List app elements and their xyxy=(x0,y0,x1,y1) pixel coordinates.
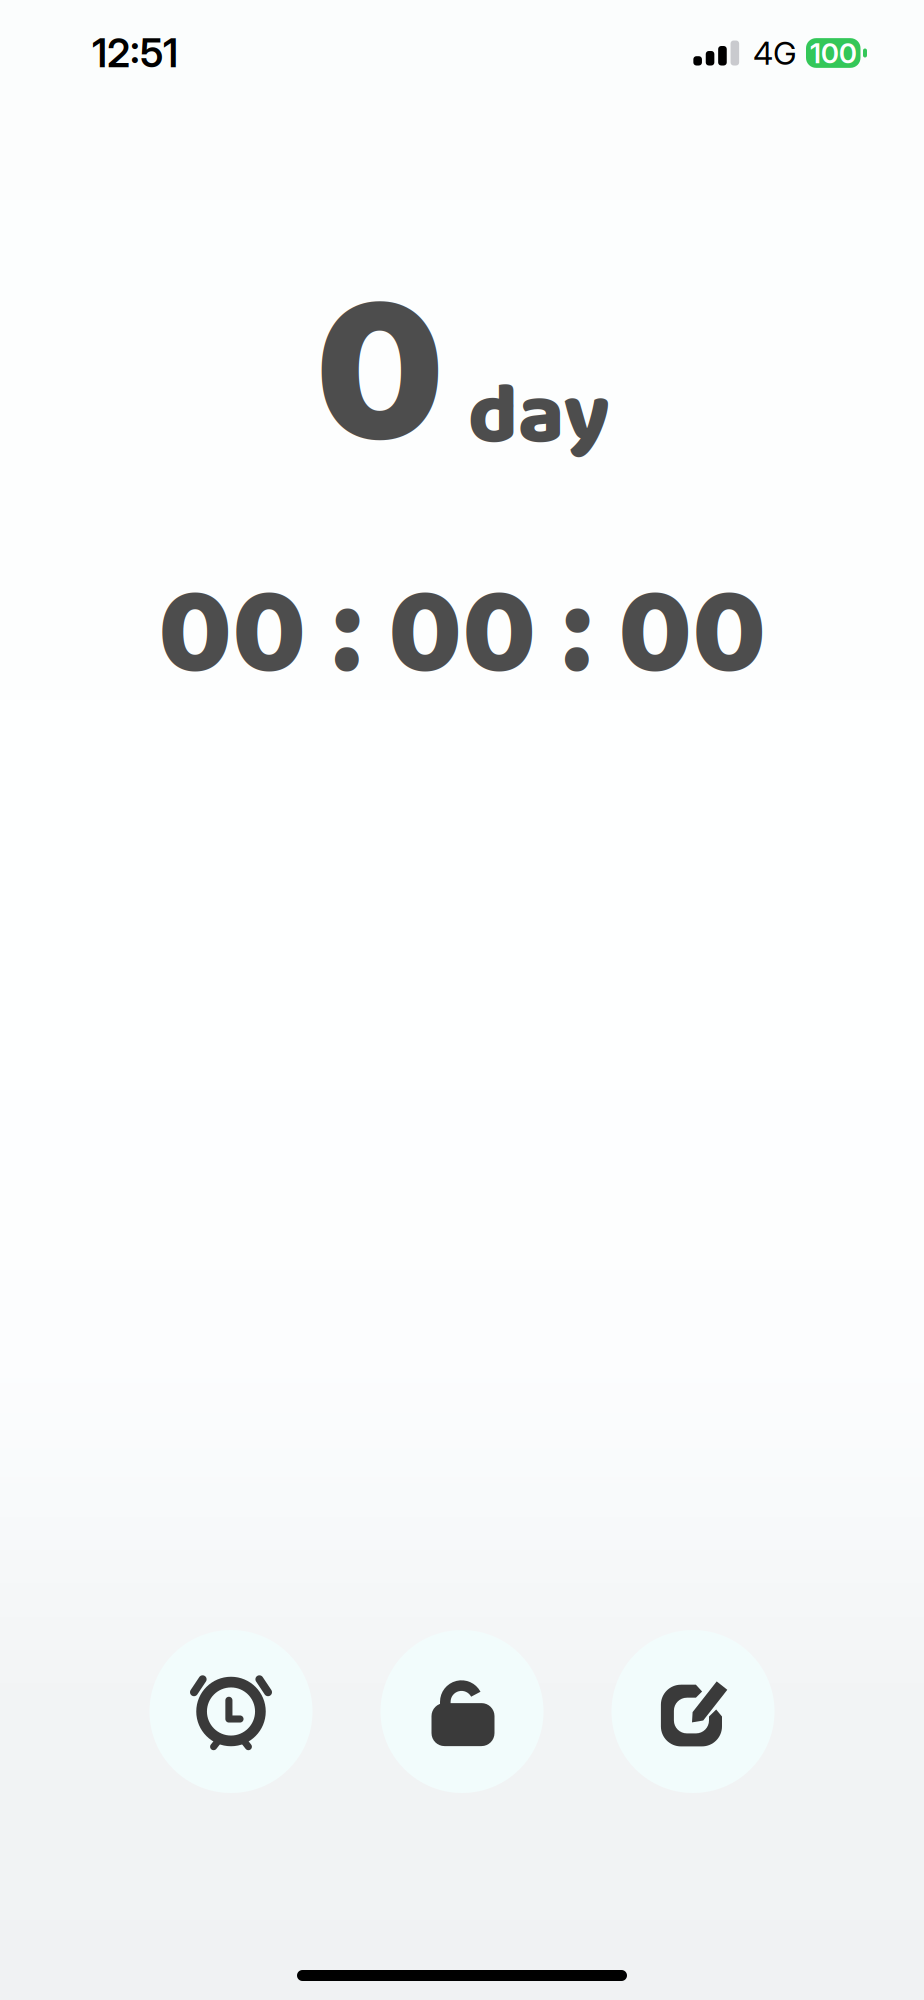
button[interactable]: Edit xyxy=(611,1630,774,1793)
button[interactable]: Unlock xyxy=(380,1630,543,1793)
staticText: 00 : 00 : 00 xyxy=(158,537,766,734)
staticText: 100 xyxy=(810,36,857,70)
staticText: 12:51 xyxy=(92,29,178,77)
button[interactable]: Set alarm xyxy=(149,1630,312,1793)
staticText: day xyxy=(468,349,610,486)
staticText: 0 xyxy=(314,203,446,551)
staticText: 4G xyxy=(753,34,797,72)
